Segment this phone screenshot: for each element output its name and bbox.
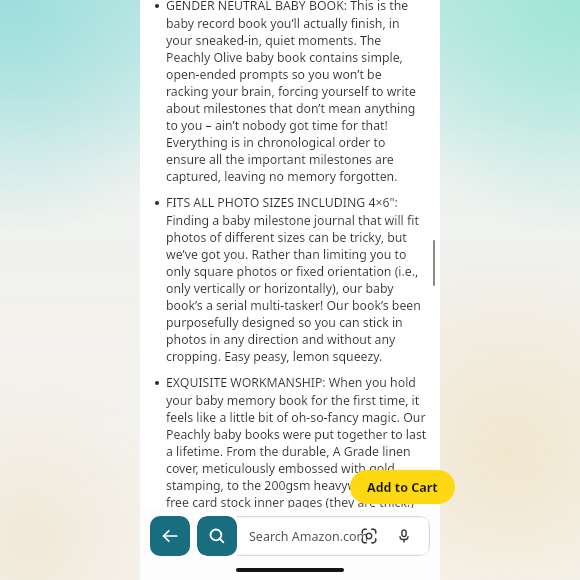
staticText: Search Amazon.com [249,528,369,545]
button[interactable]: Search by voice [391,523,417,549]
button[interactable]: Search [197,516,430,556]
staticText: DESIGNED FOR ALL FAMILIES (LGBTQ+ & ADOP… [166,554,427,577]
button[interactable]: Back [150,516,190,556]
button[interactable]: Search with camera [356,523,382,549]
staticText: GENDER NEUTRAL BABY BOOK: This is the ba… [166,0,427,184]
staticText: Add to Cart [367,479,438,496]
staticText: FITS ALL PHOTO SIZES INCLUDING 4×6": Fin… [166,194,427,364]
other: Search [197,516,237,556]
staticText: EXQUISITE WORKMANSHIP: When you hold you… [166,374,427,544]
button[interactable]: Add to Cart [350,470,455,504]
